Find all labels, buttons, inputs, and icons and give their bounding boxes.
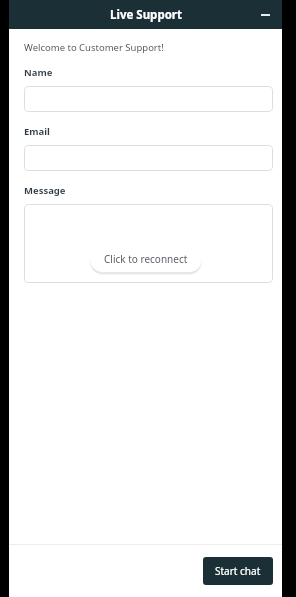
staticText: Start chat	[215, 564, 261, 578]
button[interactable]	[24, 145, 273, 171]
staticText: Click to reconnect	[104, 252, 188, 266]
staticText: Name	[24, 66, 53, 79]
button[interactable]	[24, 204, 273, 283]
staticText: Message	[24, 184, 66, 197]
staticText: Live Support	[110, 7, 182, 23]
button[interactable]: Minimize	[254, 4, 276, 26]
button[interactable]: Click to reconnect	[90, 246, 202, 272]
button[interactable]: Start chat	[203, 557, 273, 585]
staticText: Email	[24, 125, 50, 138]
button[interactable]	[24, 86, 273, 112]
staticText: Welcome to Customer Support!	[24, 41, 164, 54]
